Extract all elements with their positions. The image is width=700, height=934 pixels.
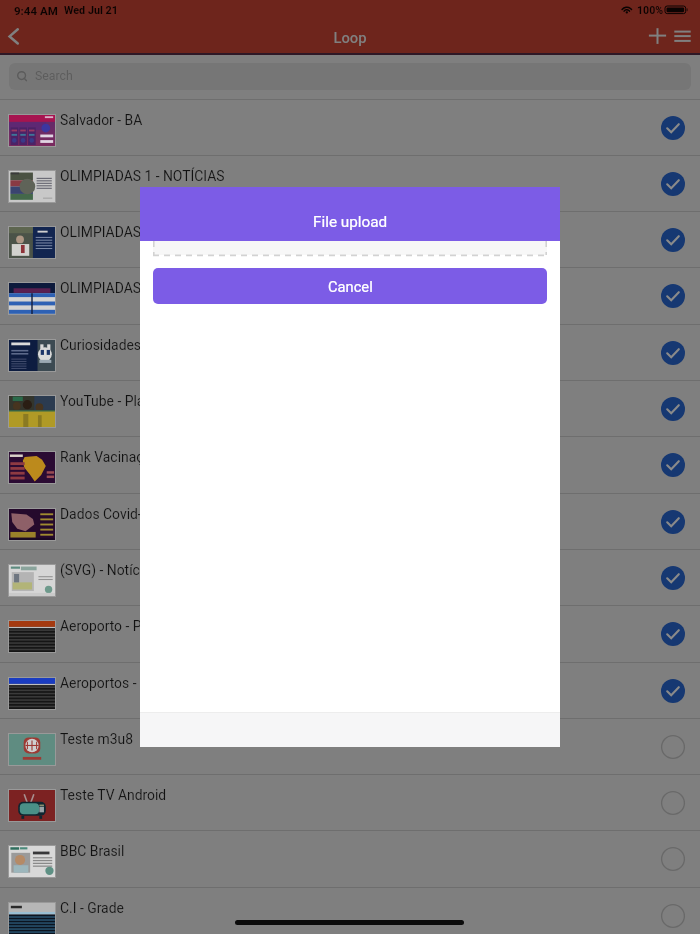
staticText: Teste m3u8 bbox=[60, 731, 133, 747]
staticText: Aeroporto - Painel bbox=[60, 618, 171, 634]
staticText: Loop bbox=[333, 29, 367, 46]
button[interactable]: Menu bbox=[666, 22, 699, 53]
staticText: OLIMPIADAS 1 - NOTÍCIAS bbox=[60, 168, 225, 184]
staticText: Curiosidades - Tokyo bbox=[60, 337, 189, 353]
staticText: Teste TV Android bbox=[60, 787, 167, 803]
button[interactable]: OLIMPIADAS 1 - NOTÍCIAS bbox=[0, 155, 700, 211]
staticText: Wed Jul 21 bbox=[64, 4, 118, 17]
staticText: BBC Brasil bbox=[60, 843, 125, 859]
staticText: 100% bbox=[637, 4, 664, 16]
staticText: (SVG) - Notícias bbox=[60, 562, 158, 578]
button[interactable]: BBC Brasil bbox=[0, 830, 700, 886]
staticText: File upload bbox=[313, 213, 388, 231]
button[interactable]: OLIMPIADAS 2 - NOTÍCIAS bbox=[0, 211, 700, 267]
button[interactable]: Aeroportos - Painel bbox=[0, 662, 700, 718]
staticText: Cancel bbox=[328, 278, 373, 295]
staticText: YouTube - Playlist bbox=[60, 393, 170, 409]
button[interactable]: Curiosidades - Tokyo bbox=[0, 324, 700, 380]
staticText: OLIMPIADAS 2 - NOTÍCIAS bbox=[60, 224, 225, 240]
staticText: C.I - Grade bbox=[60, 900, 124, 916]
button[interactable]: YouTube - Playlist bbox=[0, 380, 700, 436]
staticText: 9:44 AM bbox=[14, 4, 58, 17]
button[interactable]: (SVG) - Notícias bbox=[0, 549, 700, 605]
button[interactable]: Teste TV Android bbox=[0, 774, 700, 830]
button[interactable]: Rank Vacinação bbox=[0, 436, 700, 492]
staticText: Salvador - BA bbox=[60, 112, 143, 128]
staticText: Rank Vacinação bbox=[60, 449, 159, 465]
button[interactable]: Dados Covid-19 bbox=[0, 493, 700, 549]
button[interactable]: Teste m3u8 bbox=[0, 718, 700, 774]
button[interactable]: Salvador - BA bbox=[0, 99, 700, 155]
staticText: Search bbox=[35, 69, 73, 83]
staticText: Aeroportos - Painel bbox=[60, 675, 178, 691]
staticText: OLIMPIADAS 3 - TABELA bbox=[60, 280, 213, 296]
button[interactable]: Back bbox=[0, 22, 38, 53]
button[interactable]: Add bbox=[641, 22, 674, 53]
button[interactable]: Cancel bbox=[153, 268, 547, 304]
button[interactable]: Aeroporto - Painel bbox=[0, 605, 700, 661]
button[interactable]: OLIMPIADAS 3 - TABELA bbox=[0, 267, 700, 323]
button[interactable]: C.I - Grade bbox=[0, 887, 700, 934]
staticText: Dados Covid-19 bbox=[60, 506, 158, 522]
